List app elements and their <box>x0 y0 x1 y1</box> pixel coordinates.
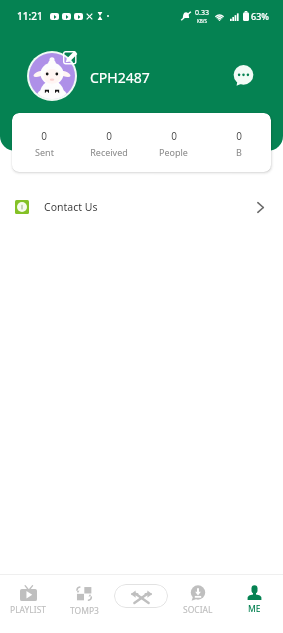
staticText: 0 <box>236 129 242 143</box>
staticText: 63% <box>251 10 269 22</box>
staticText: Sent <box>35 146 54 158</box>
staticText: 0.33 <box>195 8 209 18</box>
button[interactable]: TOMP3 <box>56 575 112 633</box>
button[interactable]: ME <box>226 575 283 633</box>
staticText: B <box>236 146 242 158</box>
staticText: Received <box>90 146 128 158</box>
button[interactable]: PLAYLIST <box>0 575 56 633</box>
staticText: 0 <box>41 129 47 143</box>
button[interactable]: SOCIAL <box>169 575 226 633</box>
button[interactable]: Shuffle <box>114 584 168 608</box>
button[interactable]: Messages <box>229 61 257 89</box>
staticText: People <box>159 146 188 158</box>
staticText: CPH2487 <box>90 68 150 87</box>
staticText: TOMP3 <box>70 605 99 617</box>
button[interactable]: Edit profile picture <box>27 51 77 101</box>
staticText: 11:21 <box>17 9 43 23</box>
staticText: 0 <box>171 129 177 143</box>
button[interactable]: Contact Us <box>0 186 283 228</box>
staticText: 0 <box>106 129 112 143</box>
staticText: ME <box>248 603 261 615</box>
staticText: Contact Us <box>44 200 98 214</box>
staticText: SOCIAL <box>183 604 213 616</box>
staticText: PLAYLIST <box>10 604 47 616</box>
staticText: KB/S <box>197 18 207 24</box>
